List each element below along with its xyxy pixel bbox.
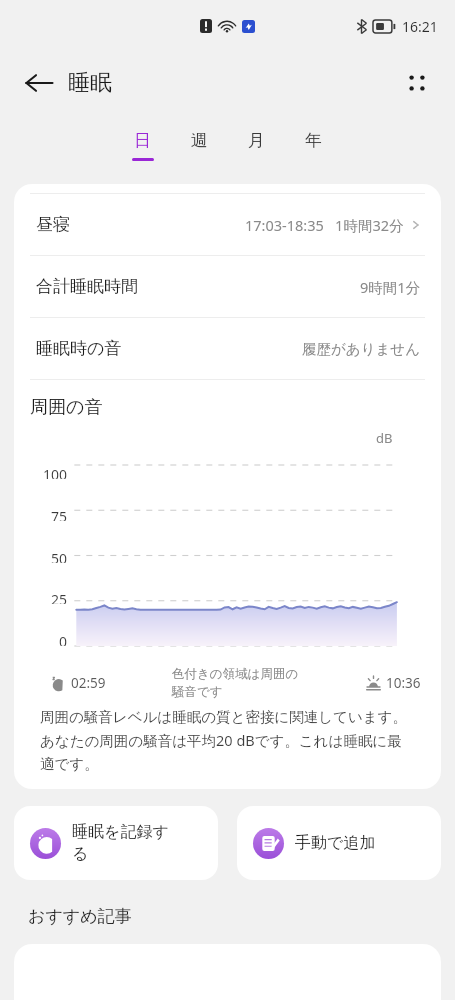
staticText: 10:36: [386, 674, 421, 692]
button[interactable]: 合計睡眠時間: [14, 256, 441, 317]
staticText: 日: [134, 130, 151, 151]
staticText: 週: [191, 130, 208, 151]
staticText: 手動で追加: [295, 833, 376, 853]
staticText: 合計睡眠時間: [36, 276, 138, 297]
staticText: 年: [305, 130, 322, 151]
staticText: 0: [59, 632, 68, 646]
staticText: 周囲の音: [30, 396, 103, 419]
staticText: 昼寝: [36, 214, 70, 235]
staticText: 16:21: [402, 17, 438, 36]
staticText: dB: [376, 429, 393, 447]
staticText: 周囲の騒音レベルは睡眠の質と密接に関連しています。あなたの周囲の騒音は平均20 …: [40, 708, 415, 773]
button[interactable]: 睡眠を記録す る: [14, 806, 218, 880]
button[interactable]: 睡眠時の音: [14, 318, 441, 379]
button[interactable]: More options: [397, 63, 437, 103]
staticText: 睡眠を記録す る: [72, 822, 169, 864]
staticText: 月: [248, 130, 265, 151]
button[interactable]: Back: [24, 68, 112, 98]
button[interactable]: 手動で追加: [237, 806, 441, 880]
staticText: おすすめ記事: [28, 906, 132, 927]
button[interactable]: 日: [114, 114, 171, 176]
staticText: 履歴がありません: [302, 340, 421, 358]
button[interactable]: 週: [171, 114, 228, 176]
staticText: 25: [51, 590, 68, 604]
staticText: 睡眠: [68, 69, 112, 97]
staticText: 75: [51, 507, 68, 521]
staticText: 色付きの領域は周囲の 騒音です: [172, 666, 299, 700]
staticText: 50: [51, 549, 68, 563]
staticText: 9時間1分: [360, 277, 421, 297]
button[interactable]: 昼寝: [14, 194, 441, 255]
button[interactable]: 月: [228, 114, 285, 176]
button[interactable]: 年: [285, 114, 342, 176]
staticText: 17:03-18:35 1時間32分: [245, 215, 404, 235]
staticText: 02:59: [71, 674, 106, 692]
other: Back: [24, 68, 54, 98]
staticText: 睡眠時の音: [36, 338, 122, 359]
staticText: 100: [43, 465, 68, 479]
